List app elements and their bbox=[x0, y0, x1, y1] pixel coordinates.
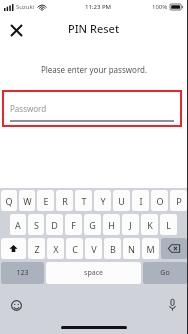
staticText: Z bbox=[34, 243, 40, 255]
staticText: Go bbox=[160, 268, 170, 278]
staticText: M bbox=[146, 243, 155, 255]
button[interactable]: T bbox=[75, 190, 92, 211]
staticText: 100% bbox=[152, 3, 168, 11]
staticText: D bbox=[51, 219, 58, 231]
button[interactable]: Emoji bbox=[8, 297, 24, 313]
button[interactable]: F bbox=[65, 214, 82, 235]
button[interactable]: Go bbox=[143, 262, 187, 284]
staticText: A bbox=[15, 219, 21, 231]
staticText: P bbox=[176, 195, 182, 207]
button[interactable]: Voice input bbox=[164, 297, 180, 313]
button[interactable]: Y bbox=[94, 190, 111, 211]
button[interactable]: E bbox=[37, 190, 54, 211]
button[interactable]: D bbox=[46, 214, 63, 235]
button[interactable]: B bbox=[104, 238, 121, 259]
button[interactable]: O bbox=[151, 190, 168, 211]
staticText: H bbox=[108, 219, 115, 231]
staticText: Please enter your password. bbox=[0, 64, 188, 75]
staticText: E bbox=[43, 195, 49, 207]
staticText: PIN Reset bbox=[68, 21, 120, 36]
button[interactable]: C bbox=[66, 238, 83, 259]
button[interactable]: N bbox=[123, 238, 140, 259]
button[interactable]: Q bbox=[1, 190, 17, 211]
staticText: L bbox=[166, 219, 171, 231]
button[interactable]: Password bbox=[10, 90, 174, 127]
button[interactable]: U bbox=[113, 190, 130, 211]
button[interactable]: Backspace bbox=[161, 238, 187, 259]
button[interactable]: Shift bbox=[1, 238, 26, 259]
staticText: V bbox=[91, 243, 97, 255]
staticText: K bbox=[147, 219, 153, 231]
button[interactable]: K bbox=[141, 214, 158, 235]
staticText: F bbox=[71, 219, 76, 231]
button[interactable]: Z bbox=[28, 238, 45, 259]
button[interactable]: 123 bbox=[1, 262, 44, 284]
staticText: I bbox=[139, 195, 143, 207]
button[interactable]: A bbox=[10, 214, 26, 235]
staticText: 123 bbox=[16, 268, 29, 278]
staticText: R bbox=[62, 195, 68, 207]
staticText: N bbox=[128, 243, 135, 255]
button[interactable]: H bbox=[103, 214, 120, 235]
staticText: O bbox=[156, 195, 164, 207]
staticText: S bbox=[34, 219, 39, 231]
button[interactable]: L bbox=[160, 214, 177, 235]
staticText: Y bbox=[100, 195, 106, 207]
button[interactable]: I bbox=[132, 190, 149, 211]
button[interactable]: R bbox=[56, 190, 73, 211]
staticText: 11:23 PM bbox=[85, 3, 112, 11]
staticText: C bbox=[72, 243, 78, 255]
staticText: space bbox=[84, 268, 103, 278]
staticText: G bbox=[89, 219, 96, 231]
staticText: B bbox=[110, 243, 116, 255]
staticText: Suzuki bbox=[16, 3, 35, 11]
staticText: X bbox=[53, 243, 59, 255]
staticText: W bbox=[23, 195, 32, 207]
button[interactable]: G bbox=[84, 214, 101, 235]
button[interactable]: Close bbox=[4, 18, 28, 42]
staticText: Q bbox=[5, 195, 13, 207]
button[interactable]: M bbox=[142, 238, 159, 259]
button[interactable]: W bbox=[19, 190, 35, 211]
button[interactable]: J bbox=[122, 214, 139, 235]
staticText: U bbox=[118, 195, 125, 207]
button[interactable]: P bbox=[170, 190, 187, 211]
button[interactable]: V bbox=[85, 238, 102, 259]
staticText: J bbox=[129, 219, 132, 231]
button[interactable]: X bbox=[47, 238, 64, 259]
button[interactable]: space bbox=[46, 262, 141, 284]
button[interactable]: S bbox=[28, 214, 44, 235]
staticText: T bbox=[81, 195, 87, 207]
staticText: Password bbox=[10, 103, 47, 114]
